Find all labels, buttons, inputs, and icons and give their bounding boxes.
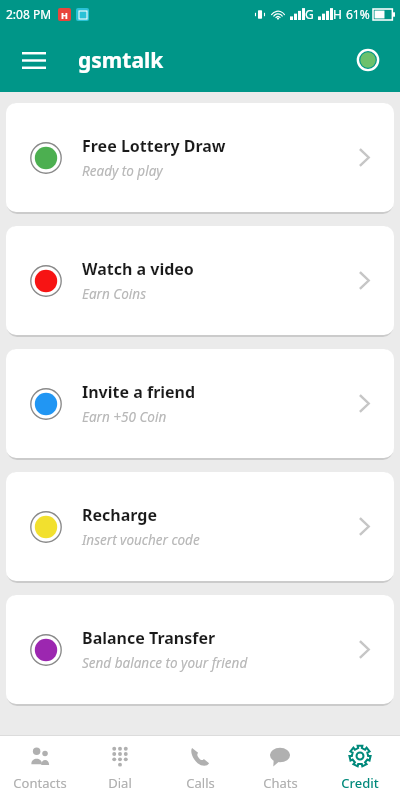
staticText: Free Lottery Draw [82, 135, 226, 157]
button[interactable]: Free Lottery Draw [6, 103, 394, 212]
button[interactable]: Contacts [0, 736, 80, 800]
staticText: Contacts [13, 774, 67, 792]
staticText: gsmtalk [78, 46, 164, 75]
staticText: 2:08 PM [6, 6, 52, 22]
button[interactable]: Balance Transfer [6, 595, 394, 704]
staticText: Recharge [82, 504, 157, 526]
staticText: Chats [263, 774, 298, 792]
staticText: Send balance to your friend [82, 654, 248, 672]
staticText: Earn Coins [82, 285, 146, 303]
staticText: Dial [108, 774, 132, 792]
staticText: H [333, 6, 342, 22]
button[interactable]: Recharge [6, 472, 394, 581]
staticText: Insert voucher code [82, 531, 200, 549]
button[interactable]: Watch a video [6, 226, 394, 335]
button[interactable]: Open navigation menu [10, 36, 58, 84]
staticText: Invite a friend [82, 381, 196, 403]
staticText: H [61, 9, 68, 21]
button[interactable]: Account status [346, 38, 390, 82]
staticText: G [305, 6, 314, 22]
staticText: Ready to play [82, 162, 163, 180]
staticText: Calls [186, 774, 215, 792]
staticText: Earn +50 Coin [82, 408, 167, 426]
staticText: Credit [341, 774, 379, 792]
button[interactable]: Dial [80, 736, 160, 800]
button[interactable]: Credit [320, 736, 400, 800]
staticText: Balance Transfer [82, 627, 216, 649]
button[interactable]: Calls [160, 736, 240, 800]
staticText: 61% [346, 6, 370, 22]
staticText: Watch a video [82, 258, 194, 280]
button[interactable]: Chats [240, 736, 320, 800]
button[interactable]: Invite a friend [6, 349, 394, 458]
